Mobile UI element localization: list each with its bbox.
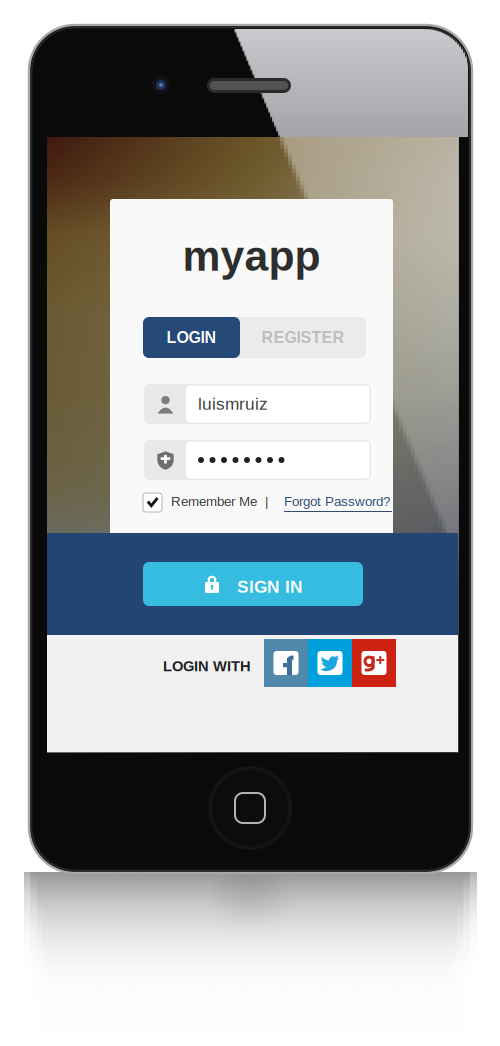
button[interactable]: Forgot Password?	[284, 494, 392, 509]
staticText: REGISTER	[261, 329, 344, 346]
button[interactable]: REGISTER	[240, 317, 366, 358]
staticText: myapp	[182, 232, 320, 280]
button[interactable]: LOGIN	[143, 317, 240, 358]
staticText: Remember Me |	[171, 494, 268, 509]
staticText: Forgot Password?	[284, 494, 390, 509]
button[interactable]: Log in with Facebook	[264, 639, 500, 1046]
button[interactable]: SIGN IN	[143, 562, 363, 606]
button[interactable]: Log in with Google Plus	[352, 639, 500, 1046]
staticText: LOGIN	[166, 329, 216, 346]
button[interactable]: Remember Me	[143, 493, 500, 1046]
staticText: SIGN IN	[237, 577, 303, 596]
staticText: LOGIN WITH	[163, 658, 251, 674]
button[interactable]: Log in with Twitter	[308, 639, 500, 1046]
staticText: luismruiz	[198, 394, 268, 413]
